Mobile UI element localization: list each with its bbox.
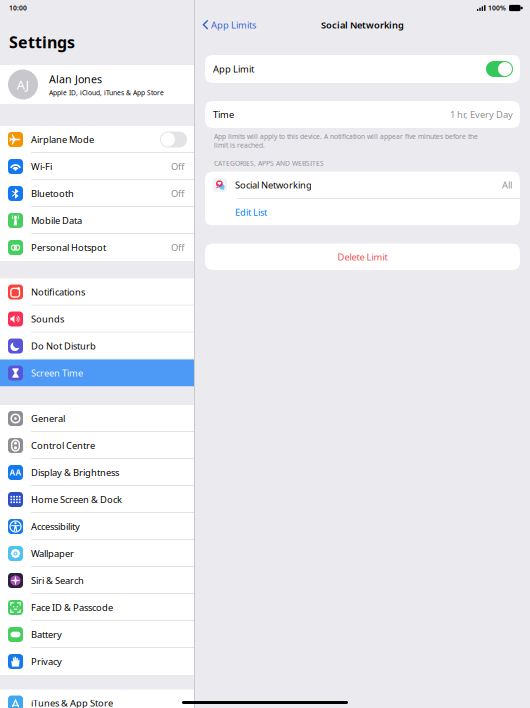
button[interactable]: Edit List bbox=[205, 199, 520, 226]
staticText: Mobile Data bbox=[31, 214, 82, 227]
staticText: App limits will apply to this device. A … bbox=[214, 132, 478, 150]
button[interactable]: iTunes & App Store bbox=[0, 689, 194, 708]
staticText: Home Screen & Dock bbox=[31, 493, 122, 506]
button[interactable]: Screen Time bbox=[0, 359, 194, 386]
button[interactable]: Battery bbox=[0, 621, 194, 648]
staticText: General bbox=[31, 412, 65, 425]
staticText: iTunes & App Store bbox=[31, 697, 113, 708]
staticText: Social Networking bbox=[235, 179, 312, 191]
staticText: All bbox=[502, 179, 512, 191]
staticText: Privacy bbox=[31, 655, 62, 668]
button[interactable]: Notifications bbox=[0, 278, 194, 305]
staticText: Face ID & Passcode bbox=[31, 601, 113, 614]
staticText: Display & Brightness bbox=[31, 466, 119, 479]
staticText: Siri & Search bbox=[31, 574, 84, 587]
staticText: Off bbox=[171, 160, 184, 173]
button[interactable]: Bluetooth bbox=[0, 180, 194, 207]
staticText: Social Networking bbox=[321, 19, 404, 31]
button[interactable]: Wallpaper bbox=[0, 540, 194, 567]
staticText: Time bbox=[213, 108, 234, 121]
staticText: Edit List bbox=[235, 206, 267, 218]
staticText: 100% bbox=[488, 4, 506, 12]
staticText: 1 hr, Every Day bbox=[450, 108, 513, 121]
button[interactable]: Airplane Mode bbox=[0, 126, 194, 153]
staticText: Sounds bbox=[31, 313, 64, 325]
staticText: Screen Time bbox=[31, 367, 83, 379]
staticText: Battery bbox=[31, 628, 62, 641]
staticText: Personal Hotspot bbox=[31, 241, 106, 254]
staticText: App Limit bbox=[213, 63, 254, 75]
staticText: Settings bbox=[9, 31, 75, 53]
staticText: 10:00 bbox=[9, 4, 27, 12]
staticText: Delete Limit bbox=[337, 251, 387, 263]
staticText: AA bbox=[9, 467, 21, 478]
staticText: Off bbox=[171, 241, 184, 254]
button[interactable]: Time bbox=[205, 101, 520, 128]
staticText: Accessibility bbox=[31, 520, 80, 533]
button[interactable]: Accessibility bbox=[0, 513, 194, 540]
button[interactable]: Privacy bbox=[0, 648, 194, 675]
staticText: Alan Jones bbox=[49, 72, 102, 86]
button[interactable]: Personal Hotspot bbox=[0, 234, 194, 261]
button[interactable]: Do Not Disturb bbox=[0, 332, 194, 359]
button[interactable]: Face ID & Passcode bbox=[0, 594, 194, 621]
staticText: Off bbox=[171, 187, 184, 200]
staticText: AJ bbox=[16, 76, 29, 93]
button[interactable]: Home Screen & Dock bbox=[0, 486, 194, 513]
button[interactable]: App Limits bbox=[195, 14, 262, 36]
button[interactable]: Control Centre bbox=[0, 432, 194, 459]
staticText: Do Not Disturb bbox=[31, 340, 96, 352]
button[interactable]: Social Networking bbox=[205, 172, 520, 198]
button[interactable]: Sounds bbox=[0, 305, 194, 332]
staticText: Notifications bbox=[31, 286, 85, 298]
button[interactable]: AJ bbox=[0, 65, 194, 104]
button[interactable]: AA bbox=[0, 459, 194, 486]
staticText: App Limits bbox=[211, 19, 256, 31]
staticText: Bluetooth bbox=[31, 187, 74, 200]
staticText: Apple ID, iCloud, iTunes & App Store bbox=[49, 88, 164, 97]
staticText: Airplane Mode bbox=[31, 133, 94, 146]
staticText: Wi-Fi bbox=[31, 160, 52, 173]
button[interactable]: General bbox=[0, 405, 194, 432]
button[interactable]: Delete Limit bbox=[205, 244, 520, 270]
button[interactable]: Mobile Data bbox=[0, 207, 194, 234]
staticText: CATEGORIES, APPS AND WEBSITES bbox=[214, 159, 324, 168]
button[interactable]: Siri & Search bbox=[0, 567, 194, 594]
staticText: Control Centre bbox=[31, 439, 95, 452]
staticText: Wallpaper bbox=[31, 547, 74, 560]
button[interactable]: Wi-Fi bbox=[0, 153, 194, 180]
